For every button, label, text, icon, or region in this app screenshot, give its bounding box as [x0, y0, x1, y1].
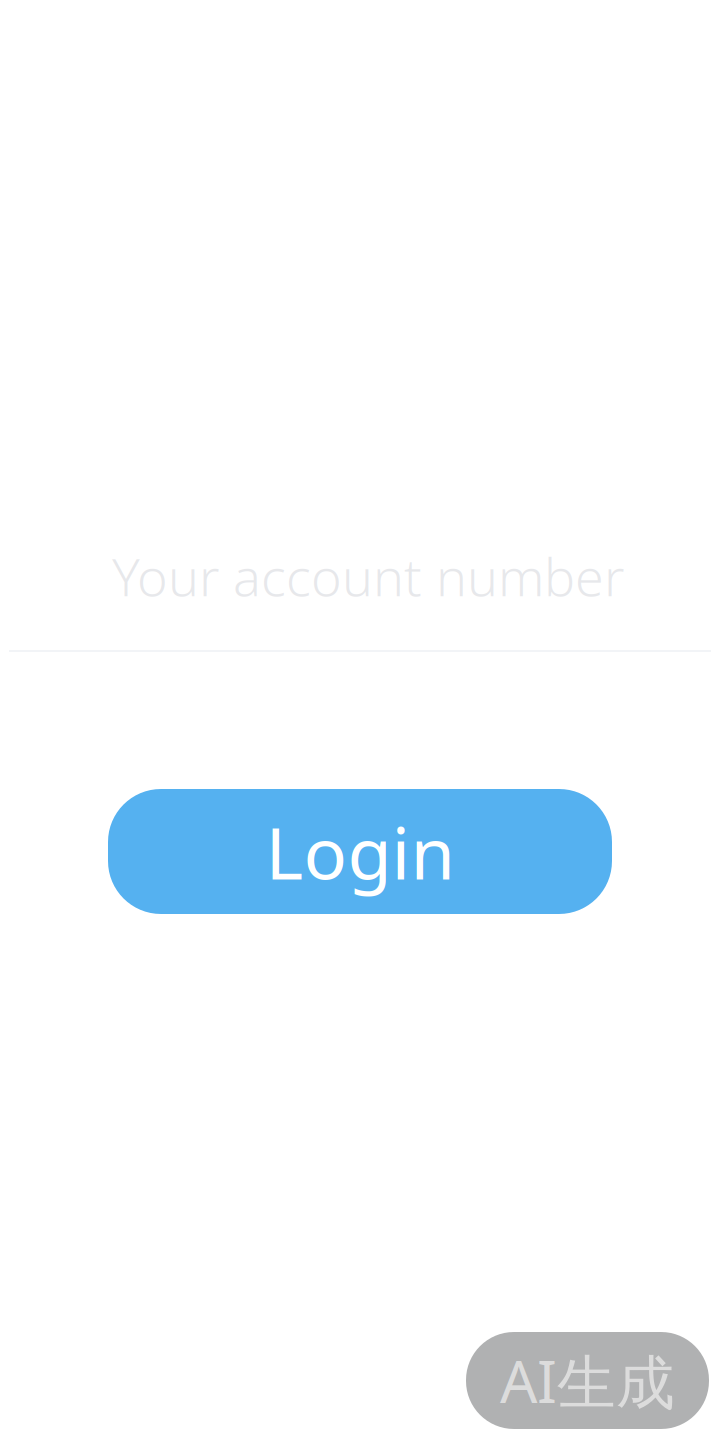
staticText: Your account number: [112, 541, 624, 611]
staticText: AI生成: [500, 1341, 675, 1420]
button[interactable]: Login: [108, 789, 612, 914]
staticText: Login: [265, 804, 454, 899]
button[interactable]: Your account number: [0, 551, 720, 652]
